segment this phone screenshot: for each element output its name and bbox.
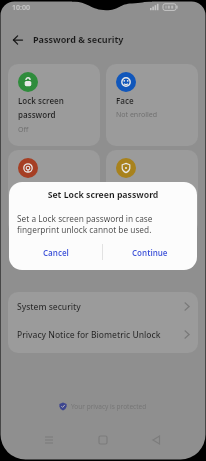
- button[interactable]: [96, 433, 110, 445]
- staticText: Lock screen: [18, 95, 64, 106]
- button[interactable]: Privacy Notice for Biometric Unlock: [8, 321, 198, 348]
- button[interactable]: Lock screen: [8, 64, 100, 146]
- staticText: Password & security: [33, 33, 124, 45]
- staticText: Privacy Notice for Biometric Unlock: [17, 329, 184, 341]
- staticText: Set a Lock screen password in case finge…: [17, 213, 153, 235]
- staticText: 10:00: [12, 3, 30, 13]
- staticText: Password: [116, 181, 154, 192]
- button[interactable]: Cancel: [9, 239, 102, 265]
- staticText: System security: [17, 301, 184, 313]
- button[interactable]: Fingerprint: [8, 150, 100, 234]
- button[interactable]: Continue: [103, 239, 197, 265]
- button[interactable]: System security: [8, 292, 198, 321]
- staticText: Set Lock screen password: [9, 189, 197, 201]
- staticText: password: [18, 109, 56, 120]
- staticText: Not enrolled: [116, 110, 158, 120]
- staticText: Your privacy is protected: [71, 402, 147, 411]
- staticText: Continue: [132, 247, 168, 258]
- staticText: Off: [18, 125, 29, 135]
- staticText: Fingerprint: [18, 181, 62, 192]
- staticText: Face: [116, 95, 134, 106]
- button[interactable]: [42, 433, 56, 445]
- button[interactable]: Face: [106, 64, 198, 146]
- button[interactable]: [149, 433, 163, 445]
- button[interactable]: Password & security: [0, 28, 206, 52]
- staticText: Cancel: [43, 247, 69, 258]
- button[interactable]: Password: [106, 150, 198, 234]
